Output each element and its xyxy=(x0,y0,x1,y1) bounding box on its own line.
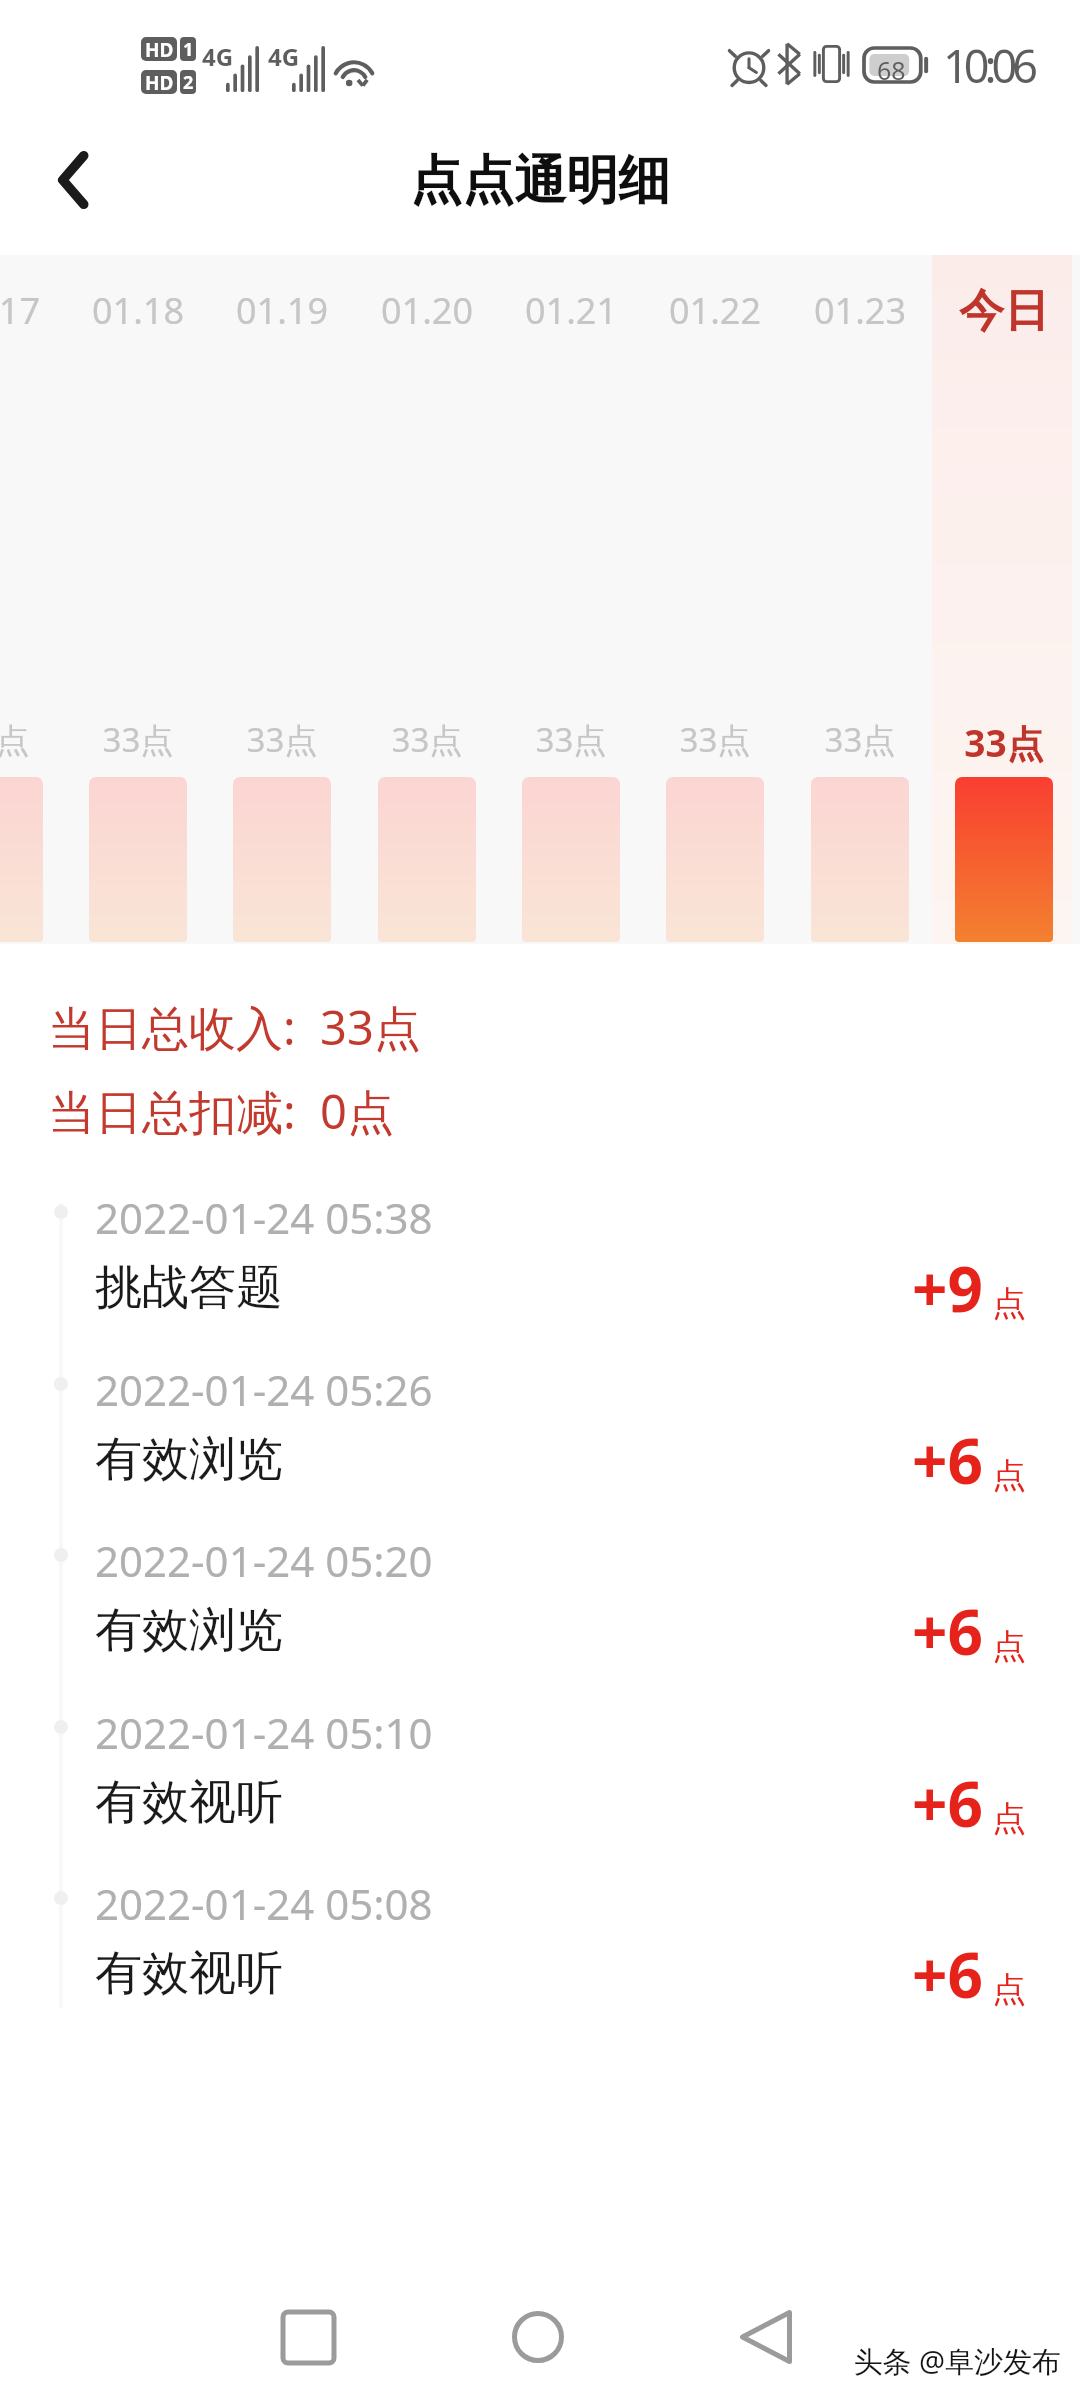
staticText: 33点 xyxy=(643,717,787,762)
staticText: 有效视听 xyxy=(95,1773,283,1832)
button[interactable]: 33点 xyxy=(643,255,787,944)
staticText: 10:06 xyxy=(943,35,1034,96)
staticText: 点 xyxy=(992,1968,1026,2011)
staticText: 01.23 xyxy=(788,286,932,335)
staticText: 01.17 xyxy=(0,286,66,335)
button[interactable]: Home xyxy=(488,2287,588,2387)
button[interactable]: 2022-01-24 05:38 xyxy=(0,1193,1080,1365)
staticText: +6 xyxy=(912,1761,983,1845)
staticText: 2022-01-24 05:26 xyxy=(95,1361,433,1418)
staticText: 33点 xyxy=(210,717,354,762)
staticText: 点 xyxy=(992,1454,1026,1497)
staticText: +6 xyxy=(912,1589,983,1673)
button[interactable]: 2022-01-24 05:26 xyxy=(0,1365,1080,1537)
staticText: 68 xyxy=(877,53,906,87)
staticText: 2 xyxy=(183,70,194,94)
button[interactable]: 2022-01-24 05:20 xyxy=(0,1536,1080,1708)
staticText: 挑战答题 xyxy=(95,1258,283,1317)
staticText: 33点 xyxy=(320,995,421,1059)
staticText: 2022-01-24 05:20 xyxy=(95,1532,433,1589)
button[interactable]: 33点 xyxy=(499,255,643,944)
staticText: 当日总扣减: xyxy=(48,1079,296,1143)
staticText: 点 xyxy=(992,1625,1026,1668)
staticText: 33点 xyxy=(0,717,66,762)
staticText: 33点 xyxy=(499,717,643,762)
staticText: +9 xyxy=(912,1246,983,1330)
staticText: 01.22 xyxy=(643,286,787,335)
staticText: 点 xyxy=(992,1797,1026,1840)
staticText: 01.21 xyxy=(499,286,643,335)
button[interactable]: 33点 xyxy=(0,255,66,944)
staticText: 有效浏览 xyxy=(95,1601,283,1660)
staticText: +6 xyxy=(912,1418,983,1502)
button[interactable]: Recents xyxy=(258,2287,358,2387)
staticText: 01.19 xyxy=(210,286,354,335)
staticText: 0点 xyxy=(320,1079,394,1143)
staticText: 有效视听 xyxy=(95,1944,283,2003)
staticText: 33点 xyxy=(355,717,499,762)
staticText: HD xyxy=(145,37,174,61)
staticText: 头条 @阜沙发布 xyxy=(600,2341,1061,2381)
button[interactable]: Back xyxy=(716,2287,816,2387)
button[interactable]: 33点 xyxy=(355,255,499,944)
button[interactable]: Back xyxy=(18,125,128,235)
staticText: 当日总收入: xyxy=(48,995,296,1059)
staticText: 01.20 xyxy=(355,286,499,335)
staticText: 4G xyxy=(202,40,234,73)
staticText: 有效浏览 xyxy=(95,1430,283,1489)
button[interactable]: 33点 xyxy=(66,255,210,944)
staticText: 33点 xyxy=(932,717,1076,768)
staticText: 2022-01-24 05:10 xyxy=(95,1704,433,1761)
button[interactable]: 2022-01-24 05:08 xyxy=(0,1879,1080,2051)
staticText: 2022-01-24 05:08 xyxy=(95,1875,433,1932)
staticText: 1 xyxy=(183,37,194,61)
button[interactable]: 33点 xyxy=(932,255,1076,944)
button[interactable]: 33点 xyxy=(788,255,932,944)
staticText: 2022-01-24 05:38 xyxy=(95,1189,433,1246)
staticText: 点点通明细 xyxy=(0,148,1080,214)
staticText: HD xyxy=(145,70,174,94)
staticText: 01.18 xyxy=(66,286,210,335)
staticText: 33点 xyxy=(66,717,210,762)
button[interactable]: 33点 xyxy=(210,255,354,944)
staticText: 33点 xyxy=(788,717,932,762)
staticText: 4G xyxy=(268,40,300,73)
staticText: 今日 xyxy=(932,283,1076,340)
staticText: 点 xyxy=(992,1282,1026,1325)
button[interactable]: 2022-01-24 05:10 xyxy=(0,1708,1080,1880)
staticText: +6 xyxy=(912,1932,983,2016)
